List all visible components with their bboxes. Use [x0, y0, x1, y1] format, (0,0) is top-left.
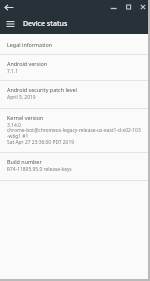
staticText: Kernel version — [7, 114, 44, 121]
staticText: 7.1.1 — [7, 68, 19, 75]
button[interactable]: Build number — [0, 153, 150, 181]
button[interactable]: Legal information — [0, 34, 150, 55]
button[interactable]: Close — [136, 0, 150, 14]
button[interactable]: Maximize — [121, 0, 136, 14]
button[interactable]: Back — [3, 1, 15, 13]
staticText: 3.14.0 chrome-bot@chromeos-legacy-releas… — [7, 122, 141, 146]
button[interactable]: Kernel version — [0, 109, 150, 153]
staticText: Android security patch level — [7, 86, 77, 93]
staticText: Device status — [23, 19, 68, 29]
button[interactable]: Minimize — [106, 0, 121, 14]
button[interactable]: Android security patch level — [0, 81, 150, 109]
button[interactable]: Open navigation menu — [0, 14, 20, 34]
button[interactable]: Android version — [0, 55, 150, 81]
staticText: April 5, 2019 — [7, 94, 36, 101]
staticText: Android version — [7, 60, 48, 67]
staticText: R74-11895.95.0 release-keys — [7, 166, 72, 173]
staticText: Legal information — [7, 41, 53, 48]
staticText: Build number — [7, 158, 42, 165]
